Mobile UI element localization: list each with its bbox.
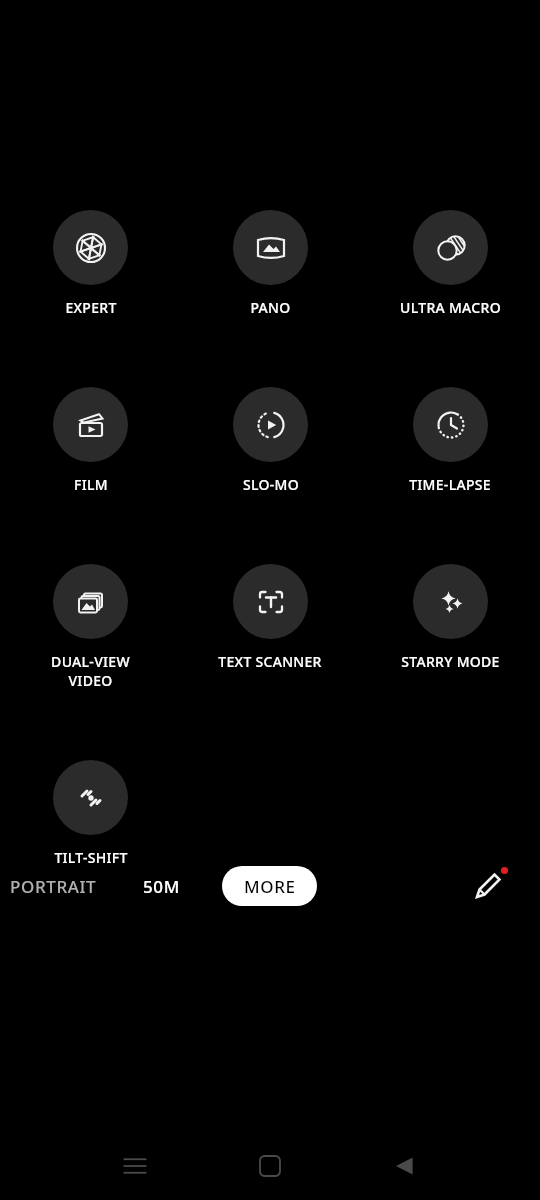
button[interactable]: DUAL-VIEW VIDEO: [47, 562, 134, 692]
staticText: STARRY MODE: [401, 652, 500, 671]
staticText: FILM: [74, 475, 108, 494]
button[interactable]: SLO-MO: [229, 385, 312, 496]
button[interactable]: FILM: [49, 385, 132, 496]
button[interactable]: TIME-LAPSE: [405, 385, 495, 496]
button[interactable]: 50M: [139, 869, 184, 904]
button[interactable]: EXPERT: [49, 208, 132, 319]
staticText: TILT-SHIFT: [54, 848, 128, 867]
staticText: TIME-LAPSE: [409, 475, 491, 494]
staticText: SLO-MO: [243, 475, 299, 494]
button[interactable]: ULTRA MACRO: [396, 208, 505, 319]
staticText: TEXT SCANNER: [218, 652, 322, 671]
button[interactable]: Recents: [105, 1136, 165, 1196]
button[interactable]: PORTRAIT: [8, 869, 99, 904]
staticText: EXPERT: [65, 298, 117, 317]
button[interactable]: Edit modes: [462, 860, 514, 912]
button[interactable]: Home: [240, 1136, 300, 1196]
staticText: MORE: [244, 875, 296, 898]
staticText: DUAL-VIEW VIDEO: [51, 652, 130, 690]
staticText: ULTRA MACRO: [400, 298, 501, 317]
button[interactable]: TILT-SHIFT: [49, 758, 132, 869]
button[interactable]: MORE: [222, 866, 317, 906]
button[interactable]: TEXT SCANNER: [214, 562, 326, 673]
button[interactable]: PANO: [229, 208, 312, 319]
staticText: PANO: [250, 298, 291, 317]
button[interactable]: Back: [375, 1136, 435, 1196]
button[interactable]: STARRY MODE: [397, 562, 504, 673]
